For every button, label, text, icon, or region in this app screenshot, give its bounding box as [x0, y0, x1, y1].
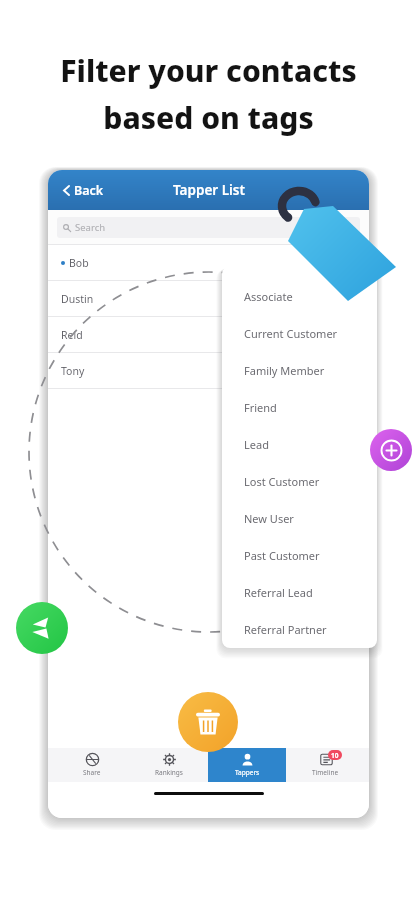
staticText: 10 — [331, 751, 339, 760]
button[interactable]: Lead — [222, 426, 377, 463]
button[interactable]: Reid — [48, 316, 369, 352]
staticText: Tappers — [235, 768, 260, 777]
button[interactable]: Past Customer — [222, 537, 377, 574]
staticText: based on tags — [103, 97, 314, 138]
staticText: Dustin — [61, 292, 94, 306]
button[interactable]: Tappers — [208, 748, 286, 782]
staticText: Current Customer — [244, 326, 338, 341]
staticText: Tony — [61, 364, 85, 378]
button[interactable]: Referral Lead — [222, 574, 377, 611]
staticText: Lost Customer — [244, 474, 320, 489]
button[interactable]: Tony — [48, 352, 369, 388]
staticText: Timeline — [312, 768, 339, 777]
button[interactable]: Lost Customer — [222, 463, 377, 500]
staticText: Tapper List — [173, 181, 245, 199]
button[interactable]: Family Member — [222, 352, 377, 389]
button[interactable]: Timeline — [286, 748, 364, 782]
button[interactable]: Bob — [48, 244, 369, 280]
button[interactable]: Rankings — [130, 748, 208, 782]
button[interactable]: New User — [222, 500, 377, 537]
button[interactable]: Share — [53, 748, 130, 782]
staticText: Bob — [69, 256, 89, 270]
staticText: Filter your contacts — [60, 50, 357, 91]
button[interactable]: Friend — [222, 389, 377, 426]
button[interactable]: Dustin — [48, 280, 369, 316]
button[interactable]: Current Customer — [222, 315, 377, 352]
staticText: Past Customer — [244, 548, 320, 563]
button[interactable]: Add — [370, 429, 412, 471]
staticText: Back — [74, 182, 104, 199]
button[interactable]: Associate — [222, 278, 377, 315]
staticText: Share — [83, 768, 101, 777]
staticText: Lead — [244, 437, 269, 452]
button[interactable]: Delete — [178, 692, 238, 752]
staticText: Search — [75, 221, 106, 234]
staticText: Family Member — [244, 363, 325, 378]
staticText: Associate — [244, 289, 293, 304]
button[interactable]: Search — [57, 217, 360, 238]
button[interactable]: Referral Partner — [222, 611, 377, 648]
staticText: Rankings — [155, 768, 183, 777]
staticText: Referral Partner — [244, 622, 327, 637]
staticText: Referral Lead — [244, 585, 313, 600]
staticText: Friend — [244, 400, 277, 415]
button[interactable]: Back — [58, 178, 108, 203]
staticText: Reid — [61, 328, 83, 342]
staticText: New User — [244, 511, 294, 526]
button[interactable]: Send — [16, 602, 68, 654]
